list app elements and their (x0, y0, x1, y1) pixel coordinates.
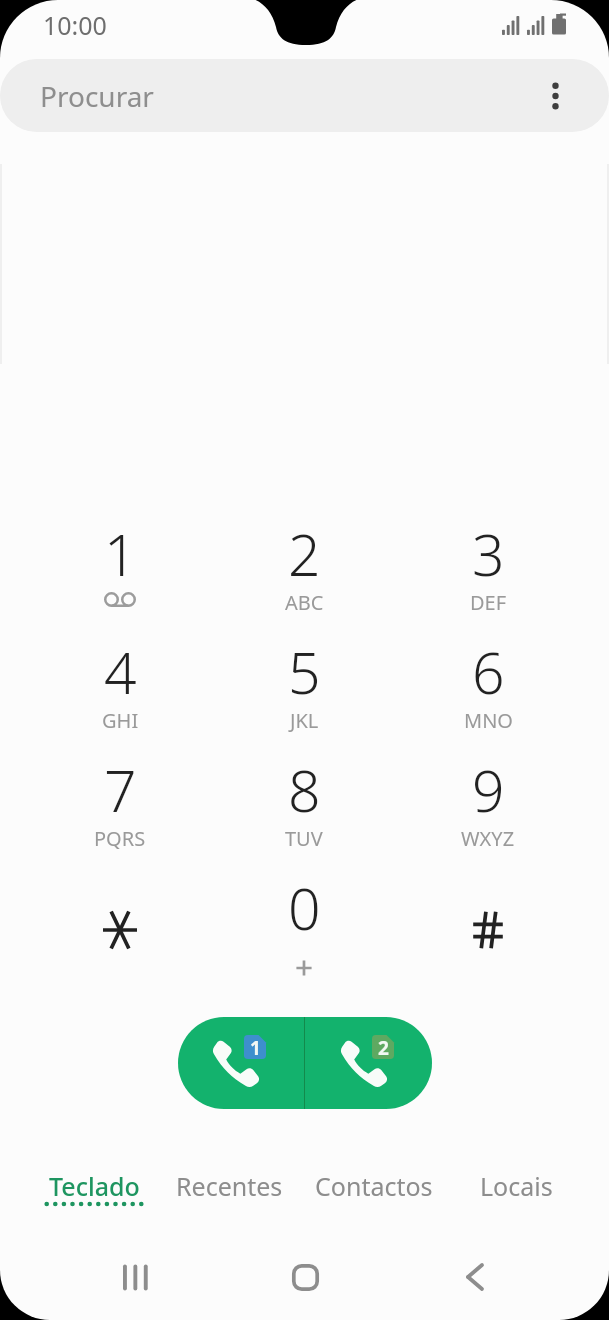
button[interactable]: Recentes (156, 1152, 302, 1218)
staticText: 0 (288, 869, 321, 947)
button[interactable]: 2 (212, 506, 396, 624)
staticText: WXYZ (461, 825, 515, 852)
staticText: 2 (378, 1035, 389, 1059)
button[interactable]: More options (531, 59, 579, 132)
button[interactable]: 5 (212, 624, 396, 742)
staticText: PQRS (94, 825, 146, 852)
staticText: 1 (250, 1035, 261, 1059)
staticText: 3 (472, 515, 505, 593)
staticText: 10:00 (43, 8, 107, 42)
staticText: 4 (104, 633, 137, 711)
staticText: TUV (285, 825, 323, 852)
staticText: 2 (288, 515, 321, 593)
staticText: ABC (285, 589, 324, 616)
staticText: 5 (288, 633, 321, 711)
button[interactable]: 8 (212, 742, 396, 860)
staticText: 9 (472, 751, 505, 829)
button[interactable]: Call with SIM 1 (178, 1017, 304, 1109)
button[interactable]: 0 (212, 860, 396, 978)
staticText: Recentes (176, 1169, 283, 1203)
staticText: MNO (464, 707, 513, 734)
staticText: 7 (104, 751, 137, 829)
button[interactable]: Procurar (0, 59, 609, 132)
button[interactable]: 9 (396, 742, 580, 860)
staticText: 1 (104, 515, 137, 593)
staticText: Locais (480, 1169, 553, 1203)
button[interactable]: Teclado (24, 1152, 164, 1218)
button[interactable] (28, 860, 212, 978)
staticText: JKL (290, 707, 319, 734)
button[interactable]: Locais (441, 1152, 591, 1218)
button[interactable]: Back (423, 1225, 527, 1320)
button[interactable]: Recents (83, 1225, 187, 1320)
button[interactable]: 7 (28, 742, 212, 860)
staticText: Teclado (49, 1169, 140, 1203)
button[interactable]: 3 (396, 506, 580, 624)
staticText: 6 (472, 633, 505, 711)
button[interactable]: Call with SIM 2 (305, 1017, 432, 1109)
staticText: 8 (288, 751, 321, 829)
button[interactable]: Contactos (299, 1152, 449, 1218)
staticText: Procurar (40, 77, 154, 115)
staticText: DEF (470, 589, 507, 616)
button[interactable]: Home (253, 1225, 357, 1320)
button[interactable]: 6 (396, 624, 580, 742)
button[interactable] (396, 860, 580, 978)
staticText: GHI (102, 707, 139, 734)
staticText: Contactos (315, 1169, 433, 1203)
button[interactable]: 4 (28, 624, 212, 742)
button[interactable]: 1 (28, 506, 212, 624)
